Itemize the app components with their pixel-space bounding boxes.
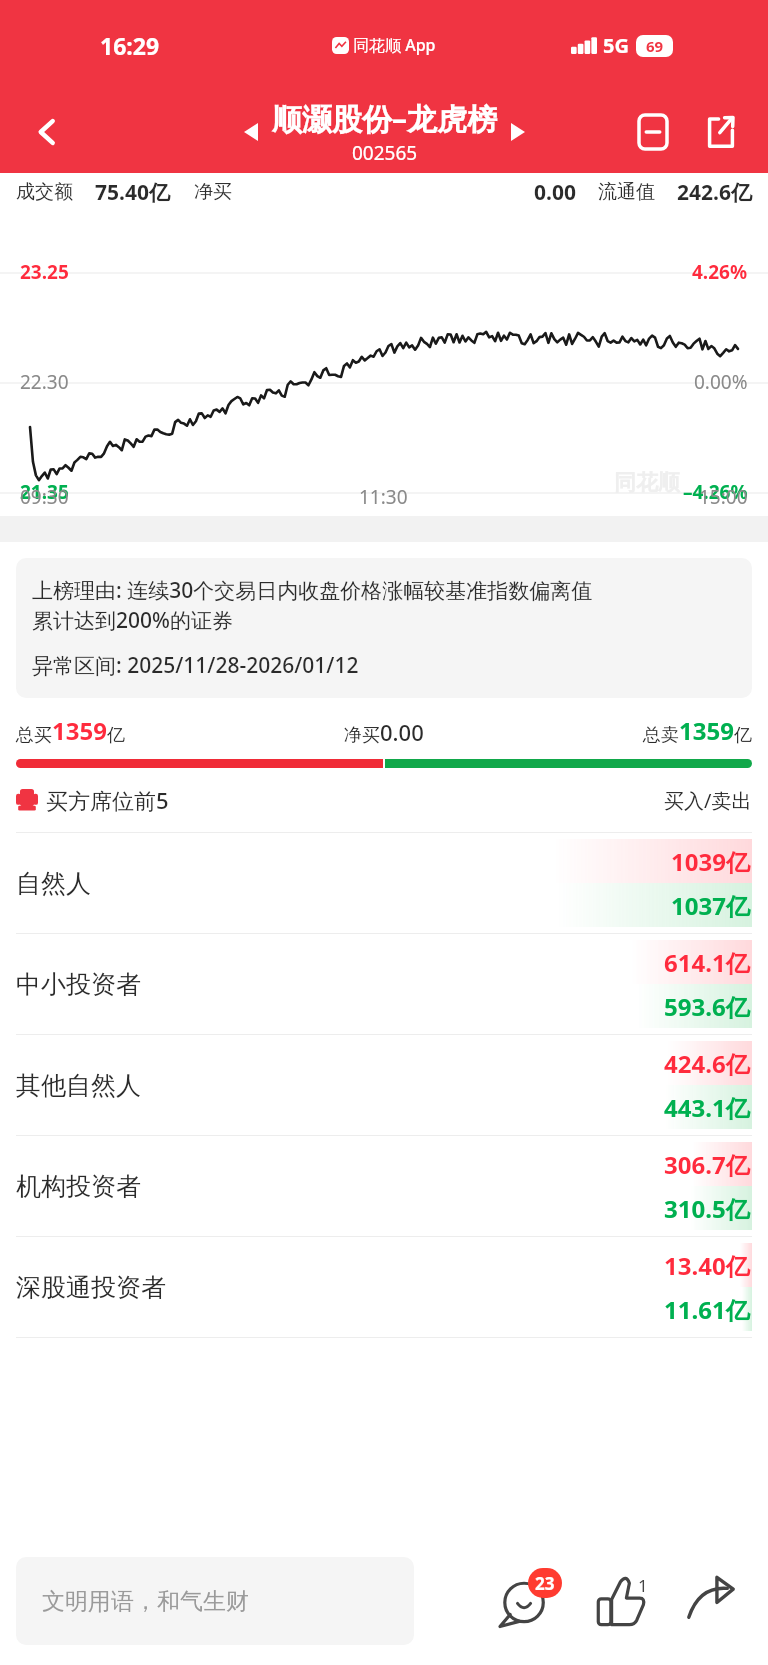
button[interactable]: Previous stock [234, 115, 268, 149]
button[interactable]: 机构投资者 [0, 1136, 768, 1236]
staticText: 总卖 [643, 724, 679, 747]
staticText: 买入/卖出 [664, 787, 752, 814]
button[interactable]: Like [582, 1564, 656, 1638]
staticText: 11.61亿 [664, 1293, 750, 1326]
button[interactable]: Back [18, 102, 78, 162]
staticText: 1359 [679, 714, 734, 747]
staticText: 69 [646, 36, 664, 56]
staticText: 异常区间: 2025/11/28-2026/01/12 [32, 651, 359, 680]
staticText: 中小投资者 [16, 969, 141, 1000]
button[interactable]: Share [674, 1564, 748, 1638]
staticText: 亿 [107, 724, 125, 747]
staticText: 443.1亿 [664, 1091, 750, 1124]
staticText: 文明用语，和气生财 [42, 1587, 249, 1616]
staticText: 11:30 [359, 484, 408, 510]
button[interactable]: Next stock [501, 115, 535, 149]
button[interactable]: 文明用语，和气生财 [16, 1557, 414, 1645]
staticText: 22.30 [20, 369, 69, 395]
staticText: 1039亿 [671, 845, 750, 878]
staticText: 15:00 [699, 484, 748, 510]
staticText: 4.26% [692, 259, 748, 285]
staticText: 75.40亿 [95, 178, 170, 207]
staticText: 1 [638, 1574, 648, 1597]
staticText: 自然人 [16, 868, 91, 899]
staticText: 同花顺 App [353, 34, 436, 56]
button[interactable]: 其他自然人 [0, 1035, 768, 1135]
staticText: 买方席位前5 [46, 785, 169, 815]
staticText: 1359 [52, 714, 107, 747]
button[interactable]: Minimize [624, 103, 682, 161]
staticText: 成交额 [16, 180, 73, 204]
staticText: 13.40亿 [664, 1249, 750, 1282]
staticText: 5G [603, 32, 629, 59]
button[interactable]: 上榜理由: 连续30个交易日内收盘价格涨幅较基准指数偏离值 累计达到200%的证… [16, 558, 752, 698]
staticText: 23 [535, 1572, 555, 1595]
button[interactable]: 自然人 [0, 833, 768, 933]
staticText: 09:30 [20, 484, 69, 510]
staticText: 顺灏股份–龙虎榜 [272, 98, 497, 139]
staticText: 0.00 [380, 717, 424, 747]
staticText: 424.6亿 [664, 1047, 750, 1080]
staticText: 净买 [194, 180, 232, 204]
staticText: 机构投资者 [16, 1171, 141, 1202]
staticText: 242.6亿 [677, 178, 752, 207]
staticText: 深股通投资者 [16, 1272, 166, 1303]
staticText: 23.25 [20, 259, 69, 285]
staticText: 净买 [344, 724, 380, 747]
staticText: 其他自然人 [16, 1070, 141, 1101]
staticText: 1037亿 [671, 889, 750, 922]
staticText: 002565 [352, 140, 418, 166]
staticText: 流通值 [598, 180, 655, 204]
staticText: 0.00% [694, 369, 748, 395]
staticText: 16:29 [100, 30, 160, 61]
staticText: 亿 [734, 724, 752, 747]
staticText: 总买 [16, 724, 52, 747]
staticText: 同花顺 [614, 469, 680, 497]
staticText: –4.26% [683, 479, 748, 505]
staticText: 21.35 [20, 479, 69, 505]
staticText: 614.1亿 [664, 946, 750, 979]
button[interactable]: Share [692, 103, 750, 161]
button[interactable]: 深股通投资者 [0, 1237, 768, 1337]
staticText: 306.7亿 [664, 1148, 750, 1181]
button[interactable]: 中小投资者 [0, 934, 768, 1034]
staticText: 上榜理由: 连续30个交易日内收盘价格涨幅较基准指数偏离值 累计达到200%的证… [32, 576, 593, 635]
staticText: 593.6亿 [664, 990, 750, 1023]
staticText: 310.5亿 [664, 1192, 750, 1225]
staticText: 0.00 [534, 178, 576, 207]
button[interactable]: Comments [490, 1564, 564, 1638]
